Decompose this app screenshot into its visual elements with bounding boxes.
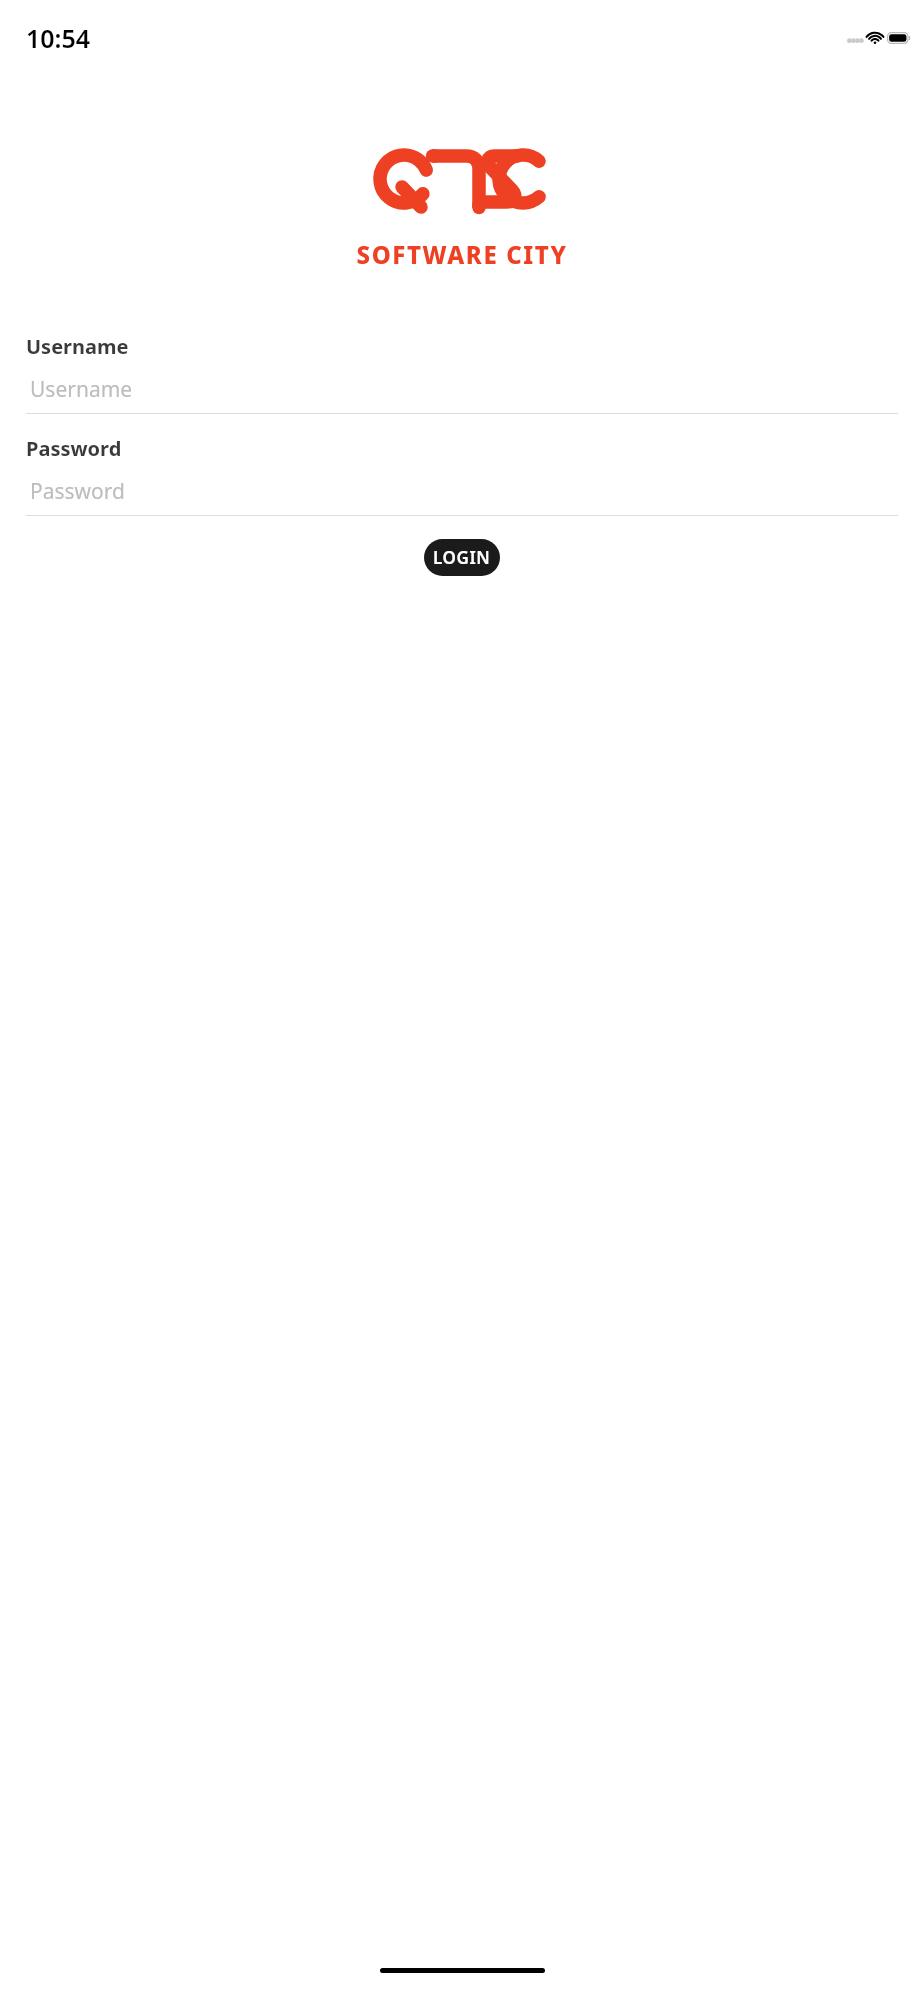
staticText: Username <box>26 333 129 360</box>
button[interactable]: LOGIN <box>424 539 500 576</box>
staticText: 10:54 <box>26 21 91 55</box>
staticText: LOGIN <box>433 546 491 569</box>
staticText: SOFTWARE CITY <box>0 238 924 271</box>
button[interactable]: Username <box>26 333 898 414</box>
staticText: Username <box>30 375 133 404</box>
staticText: Password <box>26 435 122 462</box>
button[interactable]: Password <box>26 435 898 516</box>
staticText: Password <box>30 477 125 506</box>
